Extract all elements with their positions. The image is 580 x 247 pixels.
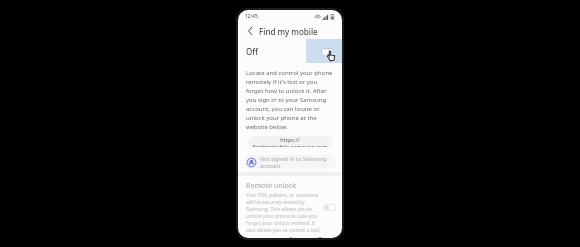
staticText: 12:45: [245, 13, 258, 20]
button[interactable]: https://findmymobile.samsung.com: [248, 136, 332, 147]
button[interactable]: Not signed in to Samsung account: [244, 155, 336, 169]
staticText: Locate and control your phone remotely i…: [246, 69, 334, 131]
staticText: Find my mobile: [259, 26, 318, 37]
staticText: Your PIN, pattern, or password will be s…: [246, 192, 320, 233]
staticText: Off: [246, 46, 258, 57]
button[interactable]: Toggle Find my mobile: [306, 39, 342, 63]
button[interactable]: Remote unlock: [238, 176, 342, 238]
button[interactable]: Back: [244, 25, 256, 37]
staticText: Not signed in to Samsung account: [260, 155, 333, 169]
staticText: Remote unlock: [246, 181, 297, 191]
staticText: https://findmymobile.samsung.com: [248, 136, 332, 147]
